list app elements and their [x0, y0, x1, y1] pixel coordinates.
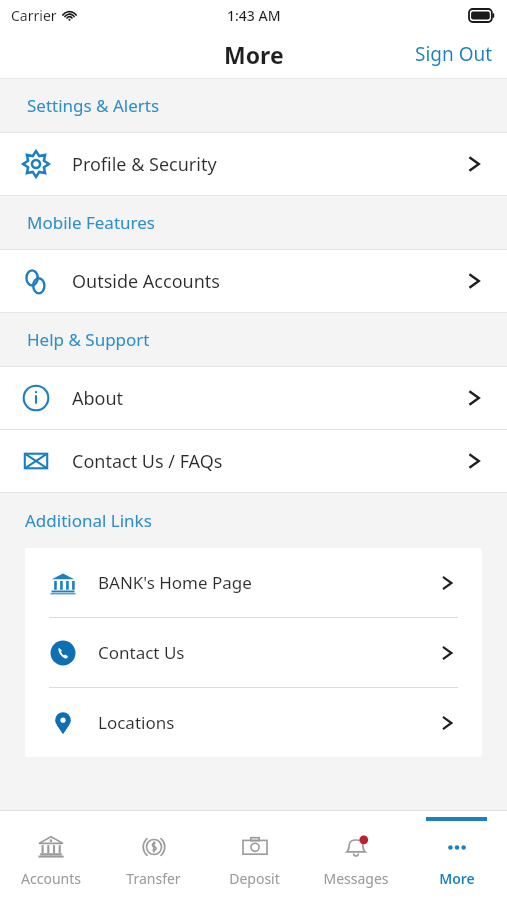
staticText: Additional Links [25, 509, 152, 532]
staticText: 1:43 AM [227, 6, 281, 25]
staticText: Carrier [11, 6, 57, 25]
staticText: Accounts [21, 869, 81, 888]
button[interactable]: About [0, 367, 507, 429]
staticText: Outside Accounts [72, 269, 220, 294]
staticText: Sign Out [415, 41, 493, 67]
button[interactable]: Deposit [204, 810, 305, 900]
staticText: Deposit [229, 869, 280, 888]
button[interactable]: Transfer [102, 810, 204, 900]
staticText: Profile & Security [72, 152, 217, 177]
staticText: Contact Us [98, 641, 185, 664]
staticText: Locations [98, 711, 175, 734]
staticText: Mobile Features [27, 211, 155, 234]
staticText: Transfer [126, 869, 181, 888]
staticText: BANK's Home Page [98, 571, 252, 594]
staticText: Settings & Alerts [27, 94, 160, 117]
staticText: More [439, 869, 475, 888]
button[interactable]: Sign Out [401, 33, 507, 75]
button[interactable]: Outside Accounts [0, 250, 507, 312]
staticText: About [72, 386, 124, 411]
button[interactable]: Profile & Security [0, 133, 507, 195]
button[interactable]: More [406, 810, 507, 900]
button[interactable]: Contact Us [25, 618, 482, 688]
button[interactable]: Messages [305, 810, 406, 900]
staticText: Help & Support [27, 328, 150, 351]
button[interactable]: Accounts [0, 810, 102, 900]
staticText: Contact Us / FAQs [72, 449, 223, 474]
staticText: Messages [323, 869, 389, 888]
staticText: More [224, 39, 284, 70]
button[interactable]: Contact Us / FAQs [0, 430, 507, 492]
button[interactable]: BANK's Home Page [25, 548, 482, 618]
button[interactable]: Locations [25, 688, 482, 757]
